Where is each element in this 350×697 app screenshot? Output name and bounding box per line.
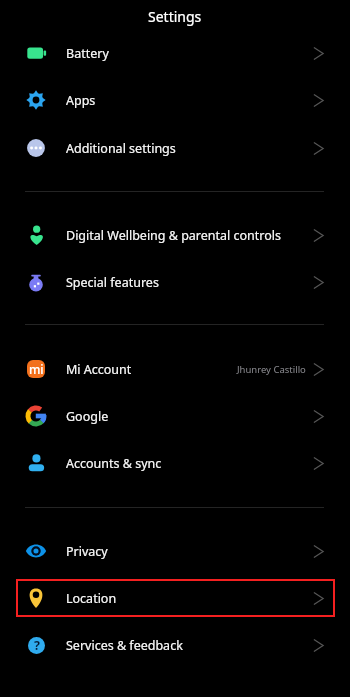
button[interactable]: Digital Wellbeing & parental controls bbox=[0, 216, 350, 254]
other: Open bbox=[313, 410, 324, 423]
staticText: Jhunrey Castillo bbox=[237, 363, 306, 376]
other: Open bbox=[313, 94, 324, 107]
staticText: Services & feedback bbox=[66, 637, 183, 654]
button[interactable]: Battery bbox=[0, 34, 350, 72]
staticText: Battery bbox=[66, 45, 109, 62]
staticText: Additional settings bbox=[66, 140, 176, 157]
other: Open bbox=[313, 363, 324, 376]
staticText: Digital Wellbeing & parental controls bbox=[66, 227, 282, 244]
other: Open bbox=[313, 229, 324, 242]
button[interactable]: Google bbox=[0, 397, 350, 435]
button[interactable]: Privacy bbox=[0, 532, 350, 570]
staticText: Accounts & sync bbox=[66, 455, 162, 472]
staticText: Mi Account bbox=[66, 361, 132, 378]
staticText: ? bbox=[34, 637, 40, 654]
staticText: Google bbox=[66, 408, 109, 425]
staticText: Special features bbox=[66, 274, 159, 291]
button[interactable]: Additional settings bbox=[0, 129, 350, 167]
button[interactable]: Special features bbox=[0, 263, 350, 301]
staticText: Apps bbox=[66, 92, 96, 109]
other: Open bbox=[313, 545, 324, 558]
button[interactable]: ? bbox=[0, 626, 350, 664]
button[interactable]: Apps bbox=[0, 81, 350, 119]
other: Open bbox=[313, 457, 324, 470]
staticText: mi bbox=[29, 361, 44, 377]
button[interactable]: mi bbox=[0, 350, 350, 388]
staticText: Privacy bbox=[66, 543, 108, 560]
staticText: Location bbox=[66, 590, 117, 607]
other: Open bbox=[313, 142, 324, 155]
staticText: Settings bbox=[148, 7, 202, 26]
other: Open bbox=[313, 276, 324, 289]
button[interactable]: Location bbox=[0, 579, 350, 617]
other: Open bbox=[313, 47, 324, 60]
other: Open bbox=[313, 639, 324, 652]
button[interactable]: Accounts & sync bbox=[0, 444, 350, 482]
other: Open bbox=[313, 592, 324, 605]
